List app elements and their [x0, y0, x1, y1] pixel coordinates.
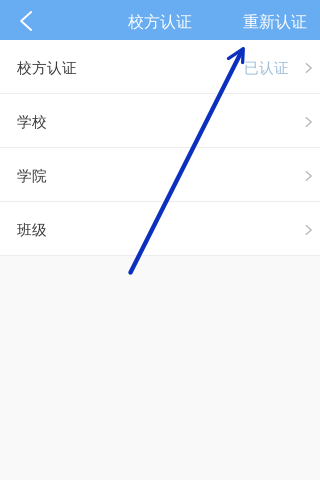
- staticText: 重新认证: [243, 12, 307, 32]
- button[interactable]: 班级: [0, 202, 320, 256]
- button[interactable]: Back: [0, 0, 46, 41]
- staticText: 学院: [17, 167, 47, 185]
- staticText: 校方认证: [128, 12, 192, 32]
- button[interactable]: 校方认证: [0, 40, 320, 94]
- button[interactable]: 学院: [0, 148, 320, 202]
- staticText: 学校: [17, 113, 47, 131]
- staticText: 已认证: [244, 59, 289, 77]
- button[interactable]: 学校: [0, 94, 320, 148]
- staticText: 班级: [17, 221, 47, 239]
- button[interactable]: 重新认证: [229, 0, 320, 42]
- staticText: 校方认证: [17, 59, 77, 77]
